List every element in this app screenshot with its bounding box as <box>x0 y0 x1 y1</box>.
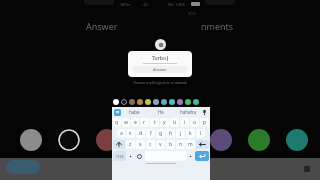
button[interactable]: Theme colour 8 <box>286 129 308 151</box>
staticText: g <box>159 130 163 137</box>
staticText: k <box>189 130 192 137</box>
staticText: p <box>203 119 207 126</box>
button[interactable]: Answer <box>133 66 187 73</box>
staticText: 90% <box>188 11 196 16</box>
button[interactable]: Emoji <box>135 151 144 161</box>
staticText: m <box>188 141 193 148</box>
staticText: n <box>179 141 183 148</box>
button[interactable]: Theme colour 3 <box>96 129 118 151</box>
button[interactable]: hahaha <box>174 109 201 115</box>
button[interactable]: Keyboard theme 9 <box>177 99 183 105</box>
button[interactable]: Backspace <box>196 140 209 149</box>
button[interactable]: t <box>150 118 159 127</box>
staticText: ?123 <box>116 154 124 159</box>
staticText: e <box>134 119 137 126</box>
button[interactable]: z <box>126 140 135 149</box>
staticText: a <box>120 130 123 137</box>
staticText: b <box>169 141 173 148</box>
button[interactable]: h <box>166 129 175 138</box>
button[interactable] <box>304 166 310 172</box>
button[interactable]: Keyboard theme 8 <box>169 99 175 105</box>
staticText: i <box>184 119 186 126</box>
staticText: z <box>129 141 132 148</box>
staticText: He <box>158 109 164 115</box>
button[interactable]: Theme colour 5 <box>172 129 194 151</box>
staticText: Answer <box>153 67 167 72</box>
staticText: 187rs <box>120 2 131 7</box>
button[interactable]: f <box>146 129 155 138</box>
button[interactable]: p <box>200 118 209 127</box>
button[interactable]: Voice input <box>201 109 208 116</box>
button[interactable]: r <box>140 118 149 127</box>
button[interactable]: b <box>166 140 175 149</box>
staticText: t <box>154 119 156 126</box>
button[interactable]: j <box>176 129 185 138</box>
button[interactable]: i <box>180 118 189 127</box>
button[interactable]: d <box>136 129 145 138</box>
button[interactable]: Keyboard theme 4 <box>137 99 143 105</box>
staticText: q <box>115 119 119 126</box>
staticText: Turbo <box>152 55 166 62</box>
staticText: f <box>150 130 152 137</box>
staticText: l <box>200 130 202 137</box>
button[interactable]: Period <box>187 151 194 161</box>
staticText: y <box>163 119 166 126</box>
button[interactable]: w <box>122 118 130 127</box>
staticText: habe <box>129 109 140 115</box>
staticText: j <box>180 130 182 137</box>
staticText: c <box>149 141 152 148</box>
button[interactable]: n <box>176 140 185 149</box>
button[interactable]: q <box>113 118 121 127</box>
staticText: Choose a wifi signal or a network <box>128 80 192 85</box>
staticText: u <box>173 119 177 126</box>
button[interactable] <box>6 160 40 174</box>
button[interactable]: He <box>147 109 174 115</box>
button[interactable]: Keyboard theme 2 <box>121 99 127 105</box>
button[interactable]: u <box>170 118 179 127</box>
button[interactable]: s <box>126 129 135 138</box>
staticText: d <box>139 130 143 137</box>
button[interactable]: habe <box>121 109 147 115</box>
button[interactable]: Theme colour 1 <box>20 129 42 151</box>
button[interactable]: a <box>117 129 125 138</box>
button[interactable]: Keyboard theme 1 <box>113 99 119 105</box>
button[interactable]: v <box>156 140 165 149</box>
button[interactable]: Keyboard theme 10 <box>185 99 191 105</box>
button[interactable]: Theme colour 2 <box>58 129 80 151</box>
staticText: 9:6 1.8% <box>168 2 185 7</box>
button[interactable]: Keyboard settings <box>114 109 121 116</box>
button[interactable]: Keyboard theme 3 <box>129 99 135 105</box>
staticText: x <box>139 141 142 148</box>
staticText: hahaha <box>180 109 196 115</box>
staticText: 4G <box>143 2 149 7</box>
button[interactable]: Theme colour 7 <box>248 129 270 151</box>
button[interactable]: Enter <box>195 151 209 161</box>
staticText: h <box>169 130 173 137</box>
staticText: s <box>129 130 132 137</box>
button[interactable]: Answer <box>86 20 118 32</box>
button[interactable]: c <box>146 140 155 149</box>
button[interactable]: y <box>160 118 169 127</box>
staticText: v <box>159 141 162 148</box>
staticText: w <box>124 119 128 126</box>
button[interactable]: Shift <box>113 140 125 149</box>
button[interactable]: ?123 <box>113 151 126 161</box>
staticText: r <box>143 119 146 126</box>
button[interactable]: m <box>186 140 195 149</box>
button[interactable]: x <box>136 140 145 149</box>
button[interactable]: l <box>196 129 205 138</box>
button[interactable]: nments <box>201 20 234 32</box>
button[interactable]: k <box>186 129 195 138</box>
button[interactable]: Theme colour 4 <box>134 129 156 151</box>
button[interactable]: Keyboard theme 5 <box>145 99 151 105</box>
staticText: o <box>193 119 197 126</box>
button[interactable]: o <box>190 118 199 127</box>
button[interactable]: Theme colour 6 <box>210 129 232 151</box>
button[interactable]: Comma <box>127 151 134 161</box>
button[interactable]: Keyboard theme 11 <box>193 99 199 105</box>
button[interactable]: e <box>131 118 139 127</box>
button[interactable]: Keyboard theme 7 <box>161 99 167 105</box>
button[interactable]: Keyboard theme 6 <box>153 99 159 105</box>
button[interactable]: g <box>156 129 165 138</box>
